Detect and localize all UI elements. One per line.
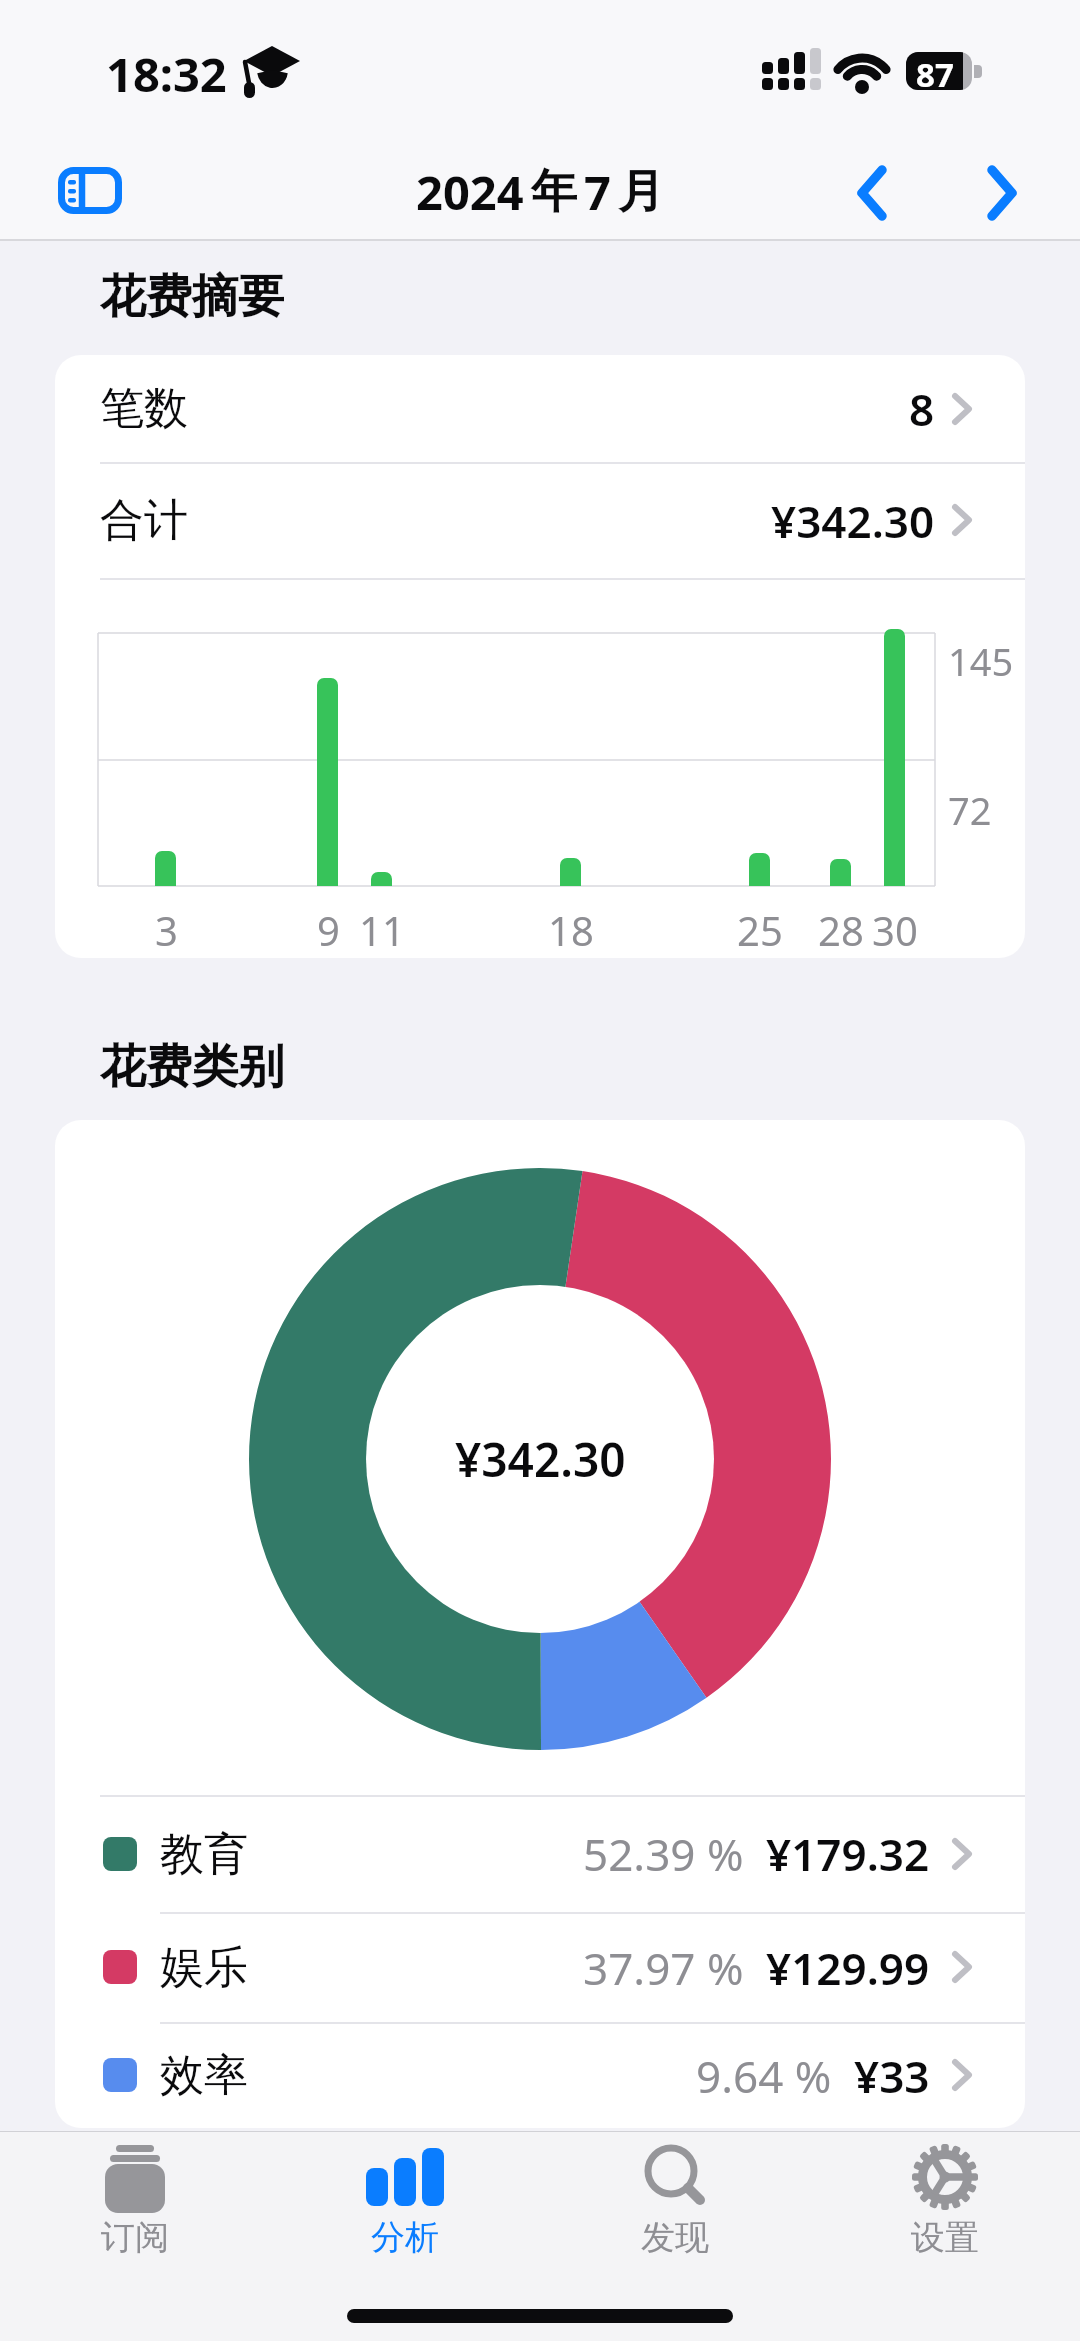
staticText: 效率 — [160, 2048, 248, 2103]
staticText: 72 — [948, 784, 992, 828]
staticText: 合计 — [100, 493, 188, 548]
staticText: 9 — [317, 903, 340, 947]
staticText: 52.39 % — [583, 1824, 744, 1884]
staticText: 37.97 % — [583, 1938, 744, 1998]
button[interactable]: 合计 — [55, 463, 1025, 578]
staticText: ¥179.32 — [766, 1824, 930, 1884]
staticText: 2024 — [416, 160, 524, 224]
staticText: ¥33 — [854, 2046, 930, 2106]
staticText: 30 — [872, 903, 918, 947]
staticText: 年 — [531, 163, 577, 221]
staticText: 7 — [584, 160, 611, 224]
staticText: ¥342.30 — [455, 1428, 626, 1491]
button[interactable]: 教育 — [55, 1796, 1025, 1912]
staticText: 18:32 — [106, 42, 227, 98]
button[interactable]: 娱乐 — [55, 1913, 1025, 2022]
staticText: 教育 — [160, 1827, 248, 1882]
staticText: 花费摘要 — [100, 268, 284, 324]
staticText: 25 — [737, 903, 783, 947]
staticText: ¥342.30 — [771, 491, 935, 551]
staticText: 笔数 — [100, 381, 188, 436]
staticText: 设置 — [911, 2216, 979, 2256]
button[interactable]: 效率 — [55, 2023, 1025, 2128]
button[interactable]: 发现 — [540, 2131, 810, 2341]
button[interactable]: 笔数 — [55, 355, 1025, 462]
staticText: 花费类别 — [100, 1038, 284, 1094]
staticText: 订阅 — [101, 2216, 169, 2256]
staticText: ¥129.99 — [766, 1938, 930, 1998]
staticText: 月 — [618, 163, 664, 221]
staticText: 145 — [948, 635, 1014, 679]
staticText: 8 — [909, 379, 935, 439]
staticText: 娱乐 — [160, 1940, 248, 1995]
staticText: 分析 — [371, 2216, 439, 2256]
button[interactable]: 设置 — [810, 2131, 1080, 2341]
staticText: 发现 — [641, 2216, 709, 2256]
button[interactable]: 订阅 — [0, 2131, 270, 2341]
staticText: 9.64 % — [696, 2046, 832, 2106]
staticText: 11 — [359, 903, 405, 947]
button[interactable] — [58, 167, 122, 214]
staticText: 3 — [155, 903, 178, 947]
button[interactable]: 分析 — [270, 2131, 540, 2341]
button[interactable] — [974, 166, 1026, 220]
staticText: 18 — [548, 903, 594, 947]
staticText: 87 — [916, 52, 954, 90]
staticText: 28 — [818, 903, 864, 947]
button[interactable] — [848, 166, 900, 220]
